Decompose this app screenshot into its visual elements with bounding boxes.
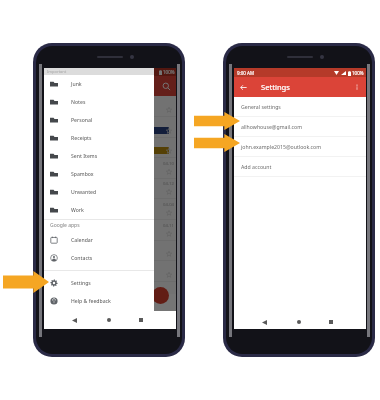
staticText: Notes <box>71 99 86 106</box>
staticText: Sent Items <box>71 153 98 160</box>
staticText: 04-10 <box>163 161 174 167</box>
button[interactable]: Recent apps <box>126 311 155 329</box>
button[interactable]: Unwanted <box>44 183 154 201</box>
staticText: Work <box>71 207 84 214</box>
button[interactable]: Home <box>94 311 123 329</box>
staticText: Contacts <box>71 255 93 262</box>
staticText: Add account <box>241 163 272 170</box>
button[interactable]: Sent Items <box>44 147 154 165</box>
button[interactable]: Work <box>44 201 154 219</box>
staticText: Junk <box>71 81 82 88</box>
staticText: General settings <box>241 103 281 110</box>
staticText: Calendar <box>71 237 93 244</box>
button[interactable]: Recent apps <box>316 315 345 329</box>
button[interactable]: allhowhouse@gmail.com <box>234 117 366 136</box>
button[interactable]: Calendar <box>44 231 154 249</box>
button[interactable]: Receipts <box>44 129 154 147</box>
button[interactable]: john.example2015@outlook.com <box>234 137 366 156</box>
button[interactable]: Contacts <box>44 249 154 267</box>
button[interactable]: Junk <box>44 75 154 93</box>
staticText: 04-04 <box>163 202 174 208</box>
button[interactable]: Notes <box>44 93 154 111</box>
staticText: Spambox <box>71 171 94 178</box>
staticText: allhowhouse@gmail.com <box>241 123 303 130</box>
button[interactable]: General settings <box>234 97 366 116</box>
staticText: Personal <box>71 117 93 124</box>
staticText: Receipts <box>71 135 92 142</box>
button[interactable]: Back <box>250 315 279 329</box>
staticText: 100% <box>352 70 364 76</box>
button[interactable]: Back <box>237 81 249 93</box>
button[interactable]: More options <box>351 81 363 93</box>
button[interactable]: Add account <box>234 157 366 176</box>
staticText: Settings <box>71 280 91 287</box>
staticText: 04-11 <box>163 223 174 229</box>
staticText: 9:00 AM <box>237 70 255 76</box>
staticText: Settings <box>261 82 290 92</box>
staticText: Help & feedback <box>71 298 111 305</box>
other: Search <box>162 82 171 91</box>
button[interactable]: Spambox <box>44 165 154 183</box>
staticText: 100% <box>163 69 175 75</box>
button[interactable]: Home <box>284 315 313 329</box>
staticText: Important <box>47 69 67 74</box>
staticText: 04-12 <box>163 181 174 187</box>
button[interactable]: Settings <box>44 274 154 292</box>
button[interactable]: Back <box>60 311 89 329</box>
staticText: Unwanted <box>71 189 97 196</box>
staticText: john.example2015@outlook.com <box>241 143 322 150</box>
button[interactable]: Personal <box>44 111 154 129</box>
button[interactable]: Compose <box>152 287 169 304</box>
staticText: Google apps <box>50 222 80 229</box>
button[interactable]: Help & feedback <box>44 292 154 310</box>
